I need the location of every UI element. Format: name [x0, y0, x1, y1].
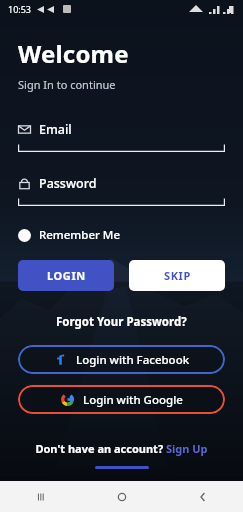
staticText: Login with Facebook — [76, 352, 190, 368]
button[interactable]: Don't have an account? Sign Up — [0, 441, 243, 456]
staticText: 10:53 — [8, 3, 32, 15]
button[interactable]: Remember Me — [18, 227, 225, 243]
staticText: Password — [39, 175, 97, 192]
button[interactable]: Home — [81, 481, 162, 512]
staticText: Don't have an account? Sign Up — [35, 441, 208, 456]
staticText: SKIP — [164, 268, 191, 283]
staticText: LOGIN — [47, 268, 86, 283]
button[interactable]: Back — [162, 481, 243, 512]
button[interactable]: Password — [18, 175, 225, 206]
staticText: Email — [39, 121, 72, 138]
button[interactable]: Forgot Your Password? — [0, 314, 243, 330]
staticText: Sign In to continue — [18, 77, 116, 92]
button[interactable]: Login with Facebook — [18, 345, 225, 374]
staticText: Login with Google — [83, 392, 183, 408]
button[interactable]: Recents — [0, 481, 81, 512]
staticText: Forgot Your Password? — [56, 314, 187, 330]
button[interactable]: Email — [18, 121, 225, 152]
button[interactable]: SKIP — [129, 260, 225, 291]
staticText: Welcome — [18, 37, 129, 70]
button[interactable]: LOGIN — [18, 260, 114, 291]
button[interactable]: Login with Google — [18, 385, 225, 414]
staticText: Remember Me — [39, 227, 120, 243]
